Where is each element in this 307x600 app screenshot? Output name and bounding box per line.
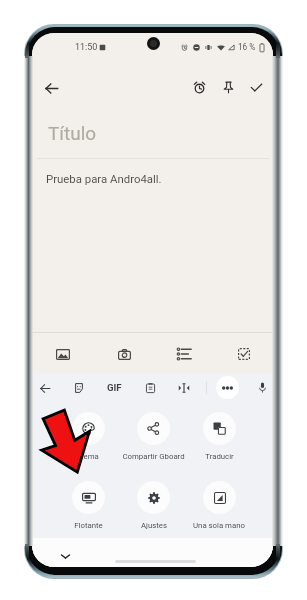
button[interactable]: Add list — [169, 339, 199, 369]
staticText: Prueba para Andro4all. — [46, 172, 162, 185]
button[interactable]: Back — [40, 77, 62, 99]
button[interactable]: Ajustes — [113, 481, 193, 533]
button[interactable]: Tema — [48, 412, 128, 464]
button[interactable]: Una sola mano — [179, 481, 259, 533]
staticText: Una sola mano — [193, 521, 245, 530]
staticText: 11:50 — [75, 42, 98, 53]
button[interactable]: Done — [245, 76, 267, 98]
staticText: GIF — [107, 382, 122, 393]
button[interactable]: Stickers — [68, 377, 90, 399]
button[interactable]: Flotante — [48, 481, 128, 533]
button[interactable]: Pin note — [217, 76, 239, 98]
staticText: 16 % — [238, 42, 256, 52]
button[interactable]: Add image — [48, 339, 78, 369]
button[interactable]: Take photo — [109, 339, 139, 369]
button[interactable]: Add checkbox — [229, 339, 259, 369]
button[interactable]: Collapse keyboard — [56, 547, 74, 565]
staticText: Traducir — [205, 452, 234, 461]
staticText: Título — [48, 122, 97, 144]
button[interactable]: Clipboard — [139, 377, 161, 399]
staticText: Tema — [79, 452, 99, 461]
button[interactable]: Compartir Gboard — [113, 412, 193, 464]
button[interactable]: Traducir — [179, 412, 259, 464]
staticText: Flotante — [74, 521, 103, 530]
button[interactable]: More options — [216, 376, 239, 399]
button[interactable]: Text editing — [173, 377, 195, 399]
staticText: Compartir Gboard — [122, 452, 185, 461]
button[interactable]: Voice input — [251, 376, 273, 398]
button[interactable]: Back to keyboard — [34, 377, 56, 399]
other: Annotation arrow — [0, 0, 307, 600]
staticText: Ajustes — [141, 521, 167, 530]
button[interactable]: GIF — [101, 376, 127, 398]
button[interactable]: Set reminder — [188, 76, 210, 98]
